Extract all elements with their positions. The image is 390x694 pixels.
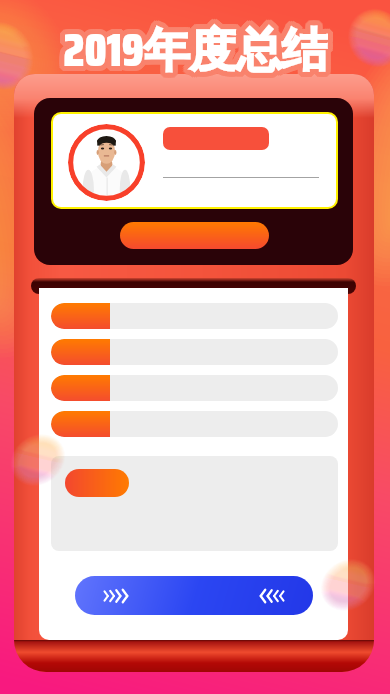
staticText: 2019年度总结 xyxy=(65,17,330,85)
staticText: 2019年度总结 xyxy=(61,15,326,83)
button[interactable] xyxy=(51,303,338,329)
staticText: 2019年度总结 xyxy=(60,15,325,83)
staticText: 2019年度总结 xyxy=(66,12,331,80)
button[interactable]: Tag xyxy=(65,469,129,497)
staticText: 2019年度总结 xyxy=(63,17,328,85)
staticText: 2019年度总结 xyxy=(60,14,325,82)
staticText: 2019年度总结 xyxy=(67,11,332,79)
staticText: 2019年度总结 xyxy=(68,14,333,82)
staticText: 2019年度总结 xyxy=(62,15,327,83)
staticText: 2019年度总结 xyxy=(63,19,328,87)
staticText: 2019年度总结 xyxy=(62,13,327,81)
staticText: 2019年度总结 xyxy=(65,14,330,82)
staticText: 2019年度总结 xyxy=(64,17,329,85)
staticText: 2019年度总结 xyxy=(68,16,333,84)
staticText: 2019年度总结 xyxy=(65,11,330,79)
staticText: 2019年度总结 xyxy=(63,14,328,82)
staticText: 2019年度总结 xyxy=(65,19,330,87)
staticText: 2019年度总结 xyxy=(60,10,325,78)
staticText: 2019年度总结 xyxy=(62,11,327,79)
staticText: 2019年度总结 xyxy=(65,13,330,81)
staticText: 2019年度总结 xyxy=(64,12,329,80)
button[interactable] xyxy=(51,375,338,401)
staticText: 2019年度总结 xyxy=(64,13,329,81)
staticText: 2019年度总结 xyxy=(61,17,326,85)
button[interactable]: Continue xyxy=(75,576,313,615)
staticText: 2019年度总结 xyxy=(60,16,325,84)
staticText: 2019年度总结 xyxy=(64,16,329,84)
staticText: 2019年度总结 xyxy=(58,12,323,80)
staticText: 2019年度总结 xyxy=(63,12,328,80)
staticText: 2019年度总结 xyxy=(60,13,325,81)
staticText: 2019年度总结 xyxy=(66,15,331,83)
staticText: 2019年度总结 xyxy=(62,13,327,81)
staticText: 2019年度总结 xyxy=(61,9,326,77)
staticText: 2019年度总结 xyxy=(62,12,327,80)
staticText: 2019年度总结 xyxy=(64,15,329,83)
staticText: 2019年度总结 xyxy=(66,13,331,81)
staticText: 2019年度总结 xyxy=(58,16,323,84)
staticText: 2019年度总结 xyxy=(59,17,324,85)
staticText: 2019年度总结 xyxy=(60,18,325,86)
staticText: 2019年度总结 xyxy=(64,13,329,81)
button[interactable]: Action xyxy=(120,222,269,249)
staticText: 2019年度总结 xyxy=(68,12,333,80)
staticText: 2019年度总结 xyxy=(66,10,331,78)
staticText: 2019年度总结 xyxy=(64,11,329,79)
staticText: 2019年度总结 xyxy=(61,13,326,81)
staticText: 2019年度总结 xyxy=(63,16,328,84)
staticText: 2019年度总结 xyxy=(64,15,329,83)
staticText: 2019年度总结 xyxy=(63,11,328,79)
staticText: 2019年度总结 xyxy=(67,17,332,85)
staticText: 2019年度总结 xyxy=(58,14,323,82)
staticText: 2019年度总结 xyxy=(62,17,327,85)
staticText: 2019年度总结 xyxy=(62,16,327,84)
staticText: 2019年度总结 xyxy=(66,16,331,84)
staticText: 2019年度总结 xyxy=(63,9,328,77)
staticText: 2019年度总结 xyxy=(65,9,330,77)
staticText: 2019年度总结 xyxy=(61,19,326,87)
button[interactable] xyxy=(51,339,338,365)
staticText: 2019年度总结 xyxy=(65,15,330,83)
button[interactable] xyxy=(51,411,338,437)
staticText: 2019年度总结 xyxy=(59,11,324,79)
staticText: 2019年度总结 xyxy=(62,15,327,83)
staticText: 2019年度总结 xyxy=(61,11,326,79)
staticText: 2019年度总结 xyxy=(66,18,331,86)
staticText: 2019年度总结 xyxy=(61,14,326,82)
staticText: 2019年度总结 xyxy=(60,12,325,80)
staticText: 2019年度总结 xyxy=(66,14,331,82)
